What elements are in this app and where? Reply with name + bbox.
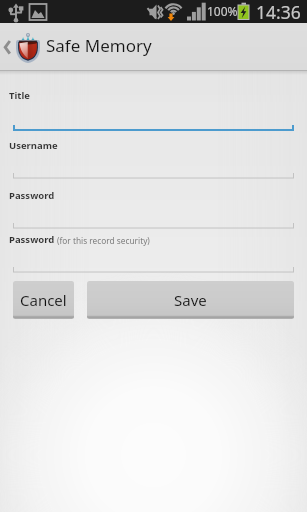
staticText: Safe Memory <box>46 34 152 57</box>
staticText: Save <box>174 290 207 310</box>
staticText: Title <box>9 89 30 102</box>
staticText: (for this record security) <box>57 235 150 246</box>
staticText: Cancel <box>20 290 67 310</box>
button[interactable]: Back <box>0 23 15 70</box>
staticText: Username <box>9 139 58 152</box>
staticText: 100% <box>207 3 238 19</box>
staticText: Password <box>9 189 55 202</box>
staticText: 14:36 <box>256 0 301 23</box>
button[interactable]: Save <box>87 281 294 319</box>
button[interactable]: Cancel <box>13 281 74 319</box>
staticText: Password <box>9 233 55 246</box>
